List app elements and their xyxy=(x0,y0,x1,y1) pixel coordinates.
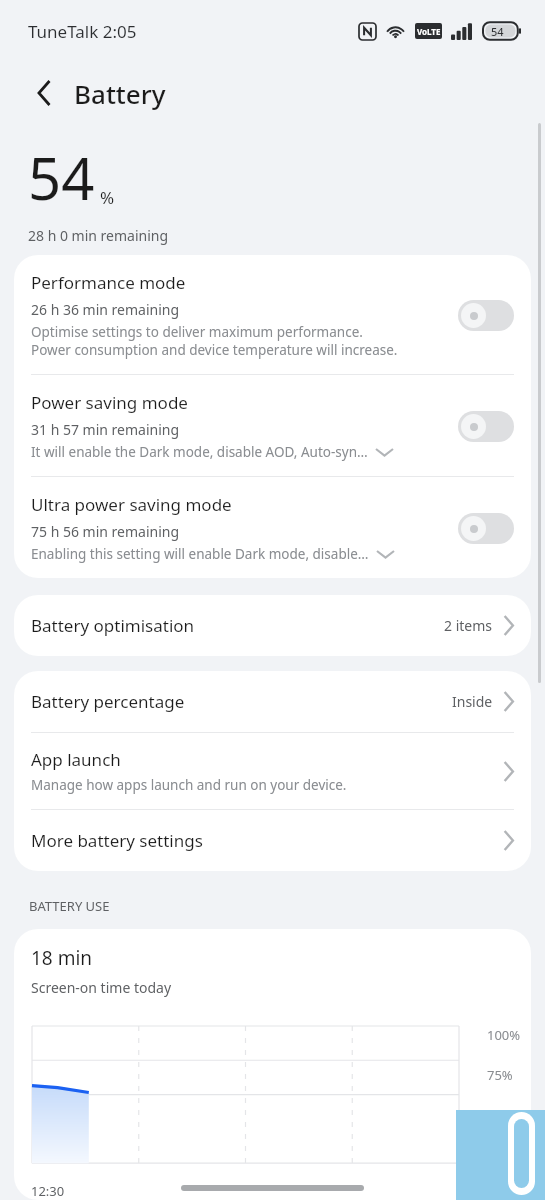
staticText: Power consumption and device temperature… xyxy=(31,341,398,359)
staticText: 18 min xyxy=(31,945,93,971)
staticText: It will enable the Dark mode, disable AO… xyxy=(31,443,368,461)
staticText: 28 h 0 min remaining xyxy=(28,226,169,245)
staticText: 75 h 56 min remaining xyxy=(31,522,180,541)
staticText: 54 xyxy=(28,138,95,217)
staticText: 12:30 xyxy=(31,1182,65,1200)
button[interactable]: Battery optimisation xyxy=(14,595,531,656)
staticText: Inside xyxy=(452,692,493,711)
staticText: Battery optimisation xyxy=(31,614,444,637)
staticText: Enabling this setting will enable Dark m… xyxy=(31,545,369,563)
staticText: 2 items xyxy=(444,616,493,635)
button[interactable]: More battery settings xyxy=(14,810,531,871)
staticText: App launch xyxy=(31,748,121,771)
staticText: BATTERY USE xyxy=(29,897,110,915)
staticText: 54 xyxy=(491,24,504,39)
staticText: Battery xyxy=(74,76,166,111)
button[interactable]: Ultra power saving mode xyxy=(14,477,531,578)
staticText: Performance mode xyxy=(31,271,186,294)
staticText: TuneTalk 2:05 xyxy=(28,20,137,43)
button[interactable]: Performance mode xyxy=(14,255,531,374)
staticText: More battery settings xyxy=(31,829,503,852)
button[interactable]: Battery percentage xyxy=(14,671,531,732)
staticText: 50% xyxy=(487,1106,513,1124)
staticText: Power saving mode xyxy=(31,391,188,414)
staticText: 75% xyxy=(487,1066,513,1084)
staticText: VoLTE xyxy=(417,26,441,37)
staticText: 26 h 36 min remaining xyxy=(31,300,180,319)
staticText: Screen-on time today xyxy=(31,978,172,997)
staticText: % xyxy=(100,186,115,209)
button[interactable]: Toggle xyxy=(458,411,514,442)
button[interactable]: Back xyxy=(28,76,62,110)
staticText: 31 h 57 min remaining xyxy=(31,420,180,439)
button[interactable]: App launch xyxy=(14,733,531,809)
staticText: Battery percentage xyxy=(31,690,452,713)
staticText: Ultra power saving mode xyxy=(31,493,232,516)
button[interactable]: Toggle xyxy=(458,300,514,331)
button[interactable]: Toggle xyxy=(458,513,514,544)
staticText: Manage how apps launch and run on your d… xyxy=(31,776,347,794)
staticText: 100% xyxy=(487,1026,521,1044)
button[interactable]: Power saving mode xyxy=(14,375,531,476)
staticText: Optimise settings to deliver maximum per… xyxy=(31,323,363,341)
staticText: 25% xyxy=(487,1146,513,1164)
